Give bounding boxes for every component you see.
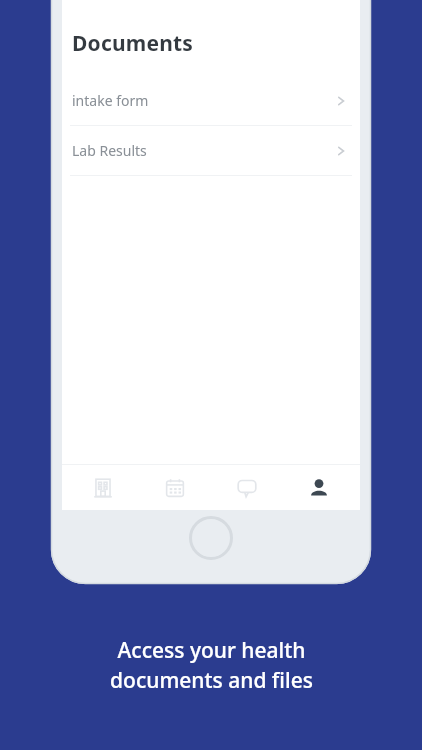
button[interactable]: Clinics [72,465,134,510]
button[interactable]: Lab Results [62,126,360,175]
button[interactable]: Appointments [144,465,206,510]
staticText: Lab Results [72,141,147,160]
button[interactable]: intake form [62,76,360,125]
staticText: intake form [72,91,149,110]
staticText: Access your health documents and files [110,636,313,694]
button[interactable]: Profile [288,465,350,510]
button[interactable]: Messages [216,465,278,510]
staticText: Documents [72,29,194,58]
other: Home [189,516,233,560]
